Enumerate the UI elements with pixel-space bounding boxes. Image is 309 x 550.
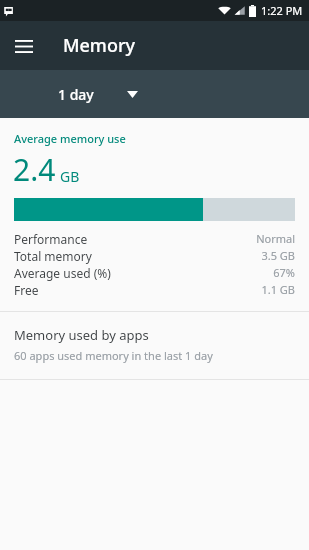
staticText: 1:22 PM: [261, 3, 303, 18]
button[interactable]: Open navigation menu: [6, 28, 42, 64]
staticText: 1.1 GB: [261, 282, 295, 297]
staticText: 2.4: [13, 149, 56, 190]
staticText: 60 apps used memory in the last 1 day: [14, 348, 213, 363]
button[interactable]: Total memory: [0, 247, 309, 264]
button[interactable]: 1 day: [58, 85, 144, 104]
staticText: Average memory use: [14, 131, 126, 146]
button[interactable]: Memory used by apps: [0, 312, 309, 379]
staticText: GB: [60, 167, 80, 186]
staticText: Memory used by apps: [14, 326, 149, 344]
staticText: 67%: [273, 265, 295, 280]
staticText: 3.5 GB: [261, 248, 295, 263]
staticText: 1 day: [58, 85, 94, 104]
button[interactable]: Free: [0, 281, 309, 298]
staticText: Average used (%): [14, 265, 111, 281]
staticText: Total memory: [14, 248, 92, 264]
button[interactable]: Performance: [0, 230, 309, 247]
button[interactable]: Average used (%): [0, 264, 309, 281]
staticText: Normal: [256, 231, 295, 246]
staticText: Free: [14, 282, 39, 298]
staticText: Memory: [63, 33, 136, 58]
staticText: Performance: [14, 231, 88, 247]
